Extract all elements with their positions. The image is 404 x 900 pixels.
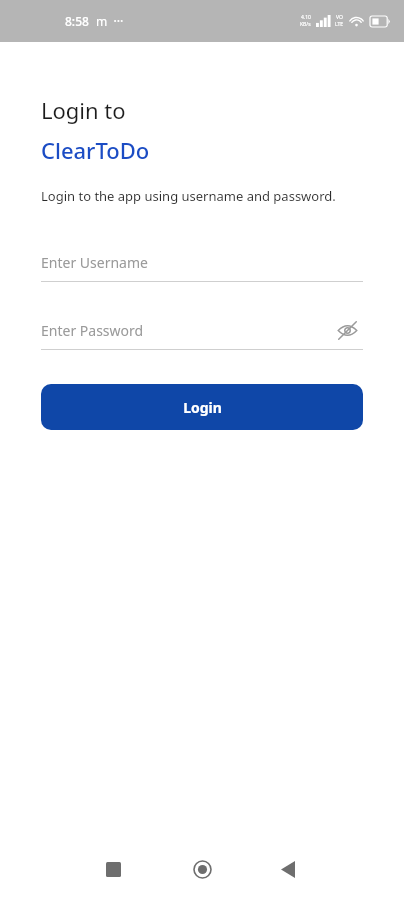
staticText: Login to the app using username and pass… <box>41 187 336 205</box>
button[interactable]: Show password <box>331 314 363 346</box>
staticText: m <box>96 13 108 29</box>
staticText: Enter Username <box>41 253 148 272</box>
button[interactable]: Back <box>268 849 308 889</box>
staticText: 8:58 <box>65 13 89 29</box>
staticText: VO <box>336 14 343 21</box>
button[interactable]: Login <box>41 384 363 430</box>
button[interactable]: Enter Username <box>41 243 363 282</box>
staticText: KB/s <box>300 21 311 28</box>
button[interactable]: Enter Password <box>41 311 363 350</box>
button[interactable]: Recent apps <box>93 849 133 889</box>
staticText: Login <box>183 398 222 417</box>
staticText: 4.10 <box>301 14 311 21</box>
staticText: LTE <box>335 21 344 28</box>
staticText: Login to <box>41 95 126 125</box>
staticText: ClearToDo <box>41 135 150 165</box>
staticText: Enter Password <box>41 321 144 340</box>
button[interactable]: Home <box>182 849 222 889</box>
